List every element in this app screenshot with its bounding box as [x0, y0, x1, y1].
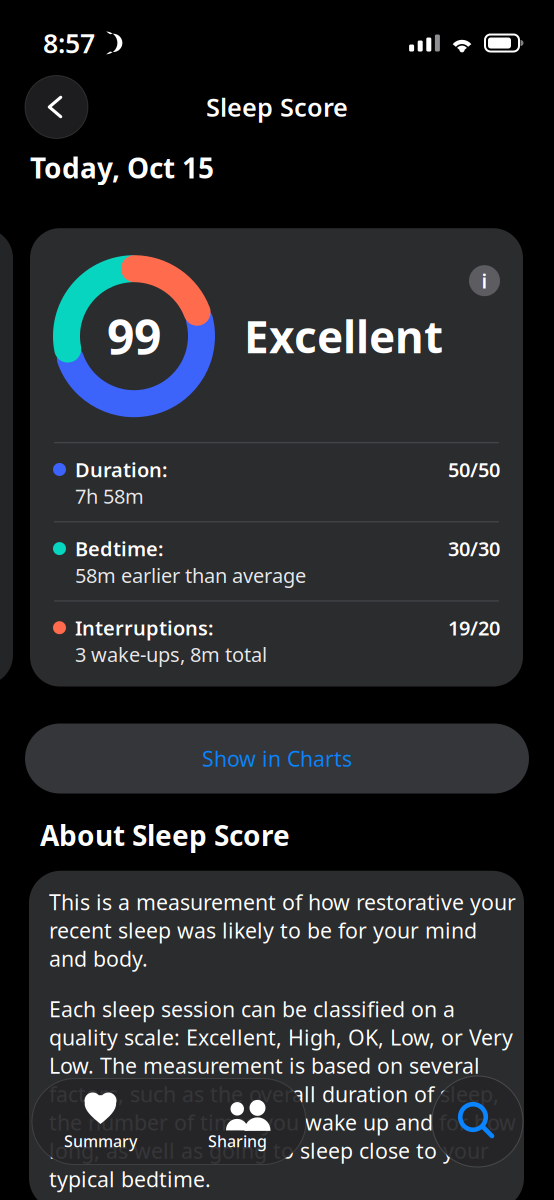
staticText: This is a measurement of how restorative… — [49, 888, 516, 973]
staticText: About Sleep Score — [40, 816, 290, 854]
staticText: 7h 58m — [75, 483, 144, 509]
staticText: 8:57 — [43, 25, 95, 61]
button[interactable]: Sharing — [169, 1078, 306, 1164]
staticText: Sharing — [208, 1130, 267, 1152]
staticText: Summary — [64, 1130, 137, 1152]
staticText: Excellent — [244, 307, 443, 365]
button[interactable]: Back — [25, 75, 88, 138]
staticText: Interruptions: — [75, 614, 214, 641]
staticText: 99 — [107, 304, 161, 368]
button[interactable]: Search — [432, 1076, 523, 1167]
staticText: Each sleep session can be classified on … — [49, 995, 516, 1193]
staticText: Today, Oct 15 — [30, 149, 214, 186]
staticText: Duration: — [75, 456, 168, 483]
staticText: Bedtime: — [75, 535, 164, 562]
staticText: Show in Charts — [202, 744, 352, 773]
staticText: 30/30 — [448, 535, 500, 562]
staticText: 58m earlier than average — [75, 562, 306, 588]
staticText: i — [481, 267, 487, 294]
staticText: 19/20 — [448, 614, 500, 641]
staticText: Sleep Score — [206, 90, 348, 124]
staticText: 3 wake-ups, 8m total — [75, 641, 267, 668]
button[interactable]: Show in Charts — [25, 723, 529, 793]
staticText: 50/50 — [448, 456, 500, 483]
button[interactable]: About Sleep Score — [469, 265, 500, 296]
button[interactable]: Summary — [32, 1078, 169, 1164]
